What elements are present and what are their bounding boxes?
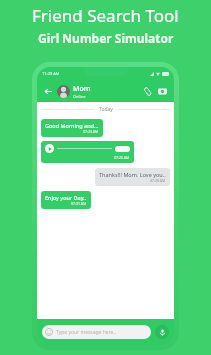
button[interactable]: Voice message — [41, 141, 134, 163]
staticText: 07:31 AM — [71, 201, 87, 206]
button[interactable]: Mom — [73, 84, 141, 99]
button[interactable]: Attach — [141, 85, 154, 98]
button[interactable]: Type your message here.. — [42, 325, 151, 339]
button[interactable]: Record voice message — [155, 325, 169, 339]
button[interactable]: Contact photo — [57, 85, 70, 98]
staticText: Good Morning and... — [45, 122, 99, 129]
button[interactable]: Thanks!!! Mom. Love you.. — [95, 168, 170, 186]
staticText: 07:28 AM — [150, 178, 166, 183]
staticText: Girl Number Simulator — [38, 30, 174, 46]
button[interactable]: Enjoy your Day.. — [41, 191, 91, 209]
staticText: 07:23 AM — [83, 129, 99, 134]
button[interactable]: Good Morning and... — [41, 119, 103, 137]
staticText: Mom — [73, 84, 91, 94]
button[interactable]: Camera — [156, 85, 169, 98]
staticText: Today — [99, 106, 113, 113]
button[interactable]: Back — [42, 85, 54, 97]
staticText: Thanks!!! Mom. Love you.. — [99, 171, 166, 178]
staticText: Online — [73, 94, 86, 99]
staticText: 11:20 AM — [42, 71, 60, 76]
staticText: Type your message here.. — [56, 329, 117, 336]
staticText: 07:26 AM — [114, 155, 130, 160]
staticText: Friend Search Tool — [32, 4, 179, 27]
staticText: Enjoy your Day.. — [45, 194, 87, 201]
